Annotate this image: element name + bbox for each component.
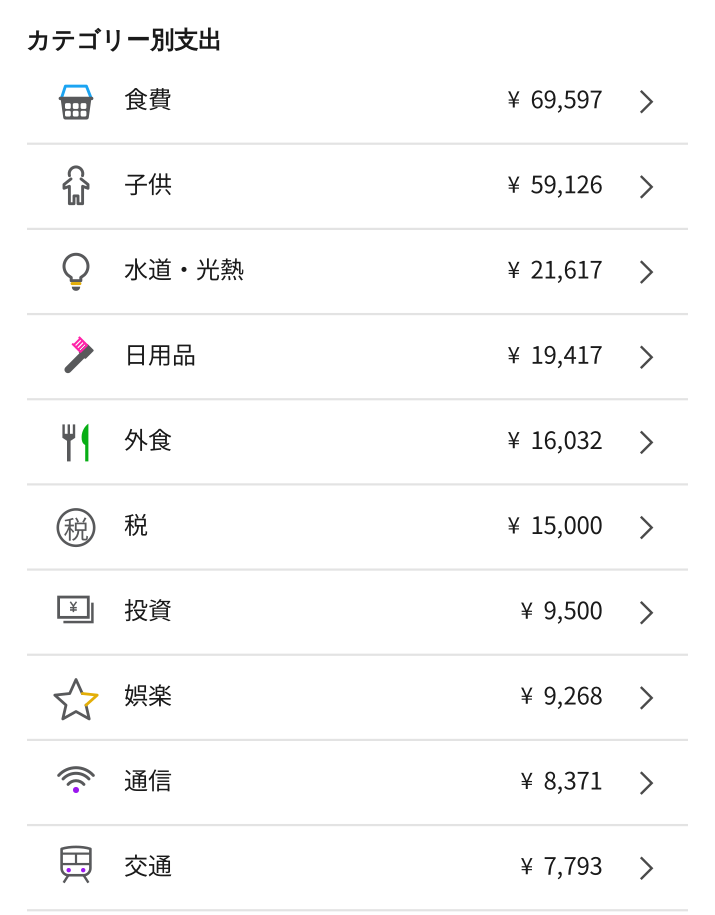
button[interactable]: 外食 (0, 400, 715, 485)
staticText: 21,617 (531, 251, 603, 285)
staticText: ¥ (521, 677, 534, 710)
staticText: ¥ (521, 848, 534, 881)
button[interactable]: 日用品 (0, 315, 715, 400)
staticText: ¥ (508, 166, 521, 199)
button[interactable]: 交通 (0, 826, 715, 911)
staticText: 税 (124, 506, 148, 541)
staticText: ¥ (508, 507, 521, 540)
staticText: カテゴリー別支出 (26, 25, 222, 55)
button[interactable]: 投資 (0, 571, 715, 656)
staticText: 9,268 (544, 676, 603, 711)
staticText: 通信 (124, 762, 172, 796)
button[interactable]: 通信 (0, 741, 715, 826)
staticText: 食費 (124, 80, 172, 115)
button[interactable]: 水道・光熱 (0, 230, 715, 315)
staticText: ¥ (508, 422, 521, 455)
staticText: ¥ (508, 81, 521, 114)
staticText: 8,371 (544, 762, 603, 796)
staticText: 69,597 (531, 80, 603, 115)
button[interactable]: 娯楽 (0, 656, 715, 741)
staticText: 19,417 (531, 336, 603, 371)
staticText: 9,500 (544, 591, 603, 626)
button[interactable]: 子供 (0, 145, 715, 230)
staticText: 外食 (124, 421, 172, 456)
staticText: 税 (63, 509, 88, 546)
staticText: 16,032 (531, 421, 603, 456)
staticText: 日用品 (124, 336, 196, 371)
staticText: ¥ (508, 337, 521, 370)
staticText: ¥ (521, 763, 534, 795)
staticText: 投資 (124, 591, 172, 626)
staticText: 15,000 (531, 506, 603, 541)
button[interactable]: 食費 (0, 60, 715, 145)
staticText: ¥ (521, 592, 534, 625)
button[interactable]: 税 (0, 485, 715, 571)
staticText: 水道・光熱 (124, 251, 244, 285)
staticText: 子供 (124, 165, 172, 200)
staticText: 7,793 (544, 847, 603, 882)
staticText: 娯楽 (124, 676, 172, 711)
staticText: ¥ (508, 252, 521, 284)
staticText: 59,126 (531, 165, 603, 200)
staticText: 交通 (124, 847, 172, 882)
